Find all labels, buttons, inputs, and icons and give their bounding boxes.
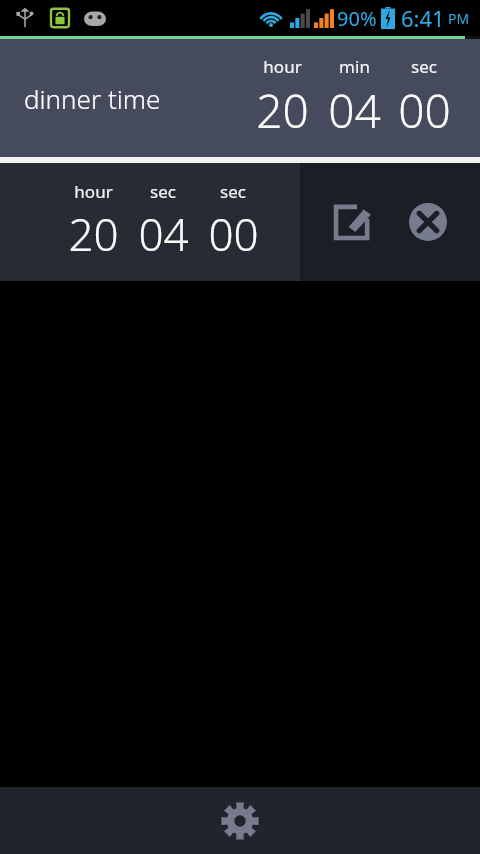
staticText: 04 — [138, 204, 189, 264]
staticText: dinner time — [24, 81, 161, 116]
staticText: 20 — [68, 204, 119, 264]
staticText: hour — [263, 55, 302, 78]
staticText: 04 — [328, 79, 381, 142]
button[interactable]: hour — [0, 163, 300, 281]
button[interactable]: Settings — [208, 789, 272, 853]
button[interactable]: Edit timer — [321, 191, 383, 253]
button[interactable]: Delete timer — [397, 191, 459, 253]
staticText: 6:41 — [401, 3, 445, 33]
staticText: 00 — [208, 204, 259, 264]
staticText: min — [339, 55, 370, 78]
staticText: 20 — [256, 79, 309, 142]
staticText: sec — [220, 180, 246, 203]
staticText: 90% — [337, 5, 377, 32]
staticText: 00 — [398, 79, 451, 142]
button[interactable]: dinner time — [0, 36, 480, 157]
staticText: hour — [74, 180, 113, 203]
staticText: sec — [411, 55, 437, 78]
staticText: sec — [150, 180, 176, 203]
staticText: PM — [448, 9, 470, 28]
